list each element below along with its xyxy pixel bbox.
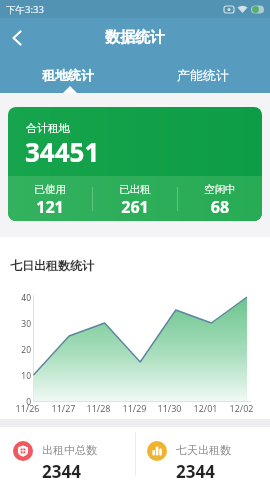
staticText: 合计租地 xyxy=(26,121,70,135)
button[interactable]: 产能统计 xyxy=(135,57,270,93)
staticText: 出租中总数 xyxy=(42,443,97,457)
staticText: 已使用 xyxy=(8,183,92,196)
staticText: 七天出租数 xyxy=(176,443,231,457)
staticText: 七日出租数统计 xyxy=(10,258,94,273)
staticText: 11/27 xyxy=(46,402,81,414)
staticText: 10 xyxy=(0,370,31,382)
staticText: 20 xyxy=(0,344,31,356)
staticText: 产能统计 xyxy=(177,67,229,83)
staticText: 已出租 xyxy=(93,183,177,196)
staticText: 261 xyxy=(93,196,177,218)
button[interactable] xyxy=(4,25,30,51)
staticText: 2344 xyxy=(176,460,215,480)
button[interactable]: 七天出租数 xyxy=(135,427,270,480)
staticText: 121 xyxy=(8,196,92,218)
button[interactable]: 空闲中 xyxy=(178,176,262,221)
staticText: 空闲中 xyxy=(178,183,262,196)
staticText: 11/28 xyxy=(81,402,116,414)
staticText: 68 xyxy=(178,196,262,218)
staticText: 11/30 xyxy=(152,402,187,414)
staticText: 12/02 xyxy=(224,402,259,414)
button[interactable]: 已使用 xyxy=(8,176,92,221)
button[interactable]: 合计租地 xyxy=(8,107,262,221)
button[interactable]: 租地统计 xyxy=(0,57,135,93)
staticText: 11/26 xyxy=(10,402,45,414)
button[interactable]: 已出租 xyxy=(93,176,177,221)
staticText: 40 xyxy=(0,292,31,304)
staticText: 0 xyxy=(0,396,31,408)
staticText: 数据统计 xyxy=(105,28,165,47)
staticText: 租地统计 xyxy=(42,67,94,83)
staticText: 30 xyxy=(0,318,31,330)
staticText: 12/01 xyxy=(188,402,223,414)
staticText: 34451 xyxy=(25,134,100,169)
staticText: 2344 xyxy=(42,460,81,480)
staticText: 11/29 xyxy=(117,402,152,414)
button[interactable]: 出租中总数 xyxy=(0,427,135,480)
staticText: 下午3:33 xyxy=(6,3,44,16)
